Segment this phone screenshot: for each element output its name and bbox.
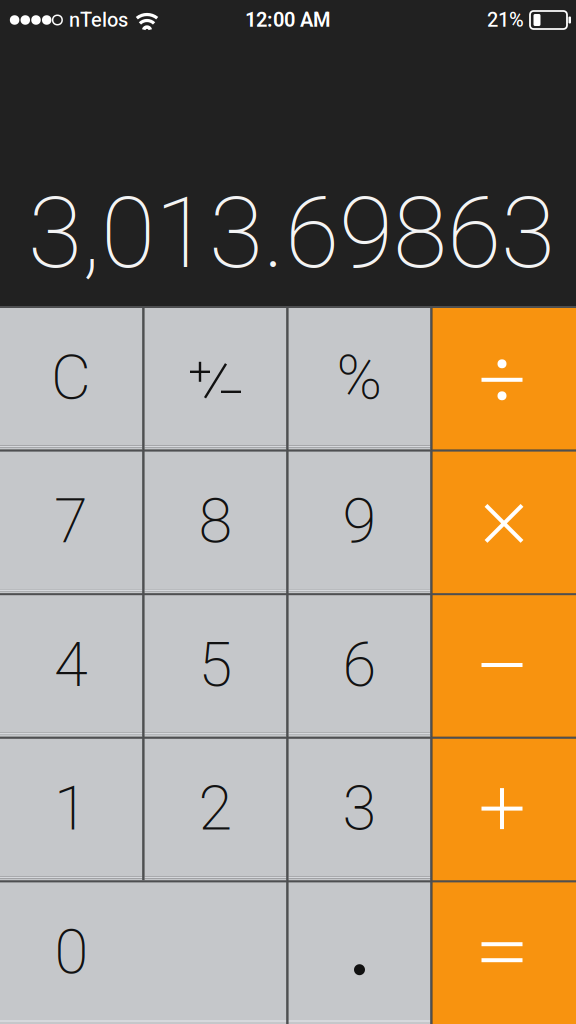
button[interactable]: 4 xyxy=(0,593,142,737)
staticText: % xyxy=(336,342,382,414)
staticText: C xyxy=(51,342,91,414)
button[interactable]: 3 xyxy=(288,737,430,880)
button[interactable]: Divide xyxy=(432,306,576,450)
button[interactable]: 5 xyxy=(144,593,286,737)
button[interactable]: 8 xyxy=(144,450,286,593)
button[interactable]: Plus minus xyxy=(144,306,286,450)
staticText: nTelos xyxy=(69,8,128,32)
button[interactable]: 1 xyxy=(0,737,142,880)
staticText: 4 xyxy=(54,629,88,701)
staticText: 8 xyxy=(198,485,232,557)
button[interactable]: 0 xyxy=(0,880,286,1024)
button[interactable]: 9 xyxy=(288,450,430,593)
staticText: 5 xyxy=(198,629,232,701)
button[interactable]: Subtract xyxy=(432,593,576,737)
staticText: 0 xyxy=(54,916,88,988)
staticText: 3 xyxy=(342,773,376,845)
button[interactable]: Add xyxy=(432,737,576,880)
button[interactable]: 7 xyxy=(0,450,142,593)
button[interactable]: Equals xyxy=(432,880,576,1024)
staticText: 21% xyxy=(487,8,524,32)
staticText: 1 xyxy=(54,773,88,845)
staticText: 6 xyxy=(342,629,376,701)
button[interactable]: Multiply xyxy=(432,450,576,593)
staticText: 7 xyxy=(54,485,88,557)
button[interactable]: C xyxy=(0,306,142,450)
button[interactable]: 6 xyxy=(288,593,430,737)
button[interactable]: 2 xyxy=(144,737,286,880)
staticText: 12:00 AM xyxy=(245,8,331,32)
staticText: 9 xyxy=(342,485,376,557)
button[interactable]: % xyxy=(288,306,430,450)
button[interactable]: Decimal point xyxy=(288,880,430,1024)
staticText: 2 xyxy=(198,773,232,845)
staticText: 3,013.69863 xyxy=(28,175,555,291)
